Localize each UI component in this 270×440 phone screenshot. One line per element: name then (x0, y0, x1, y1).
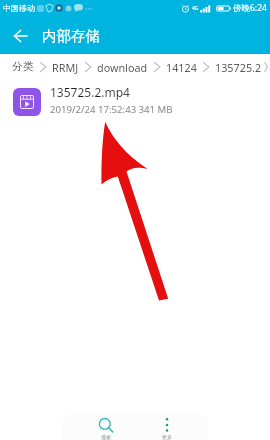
staticText: RRMJ (52, 60, 79, 75)
staticText: 135725.2.mp4 (50, 84, 130, 100)
staticText: 搜索 (101, 434, 111, 440)
button[interactable]: 14124 (166, 60, 197, 75)
staticText: 更多 (162, 434, 172, 440)
staticText: 14124 (166, 60, 197, 75)
button[interactable]: 更多 (147, 413, 187, 440)
staticText: 傍晚6:24 (233, 2, 267, 14)
button[interactable]: 分类 (12, 60, 34, 74)
staticText: 内部存储 (42, 27, 100, 45)
button[interactable]: RRMJ (52, 60, 79, 75)
button[interactable]: 搜索 (86, 413, 126, 440)
staticText: 2019/2/24 17:52:43 341 MB (50, 103, 173, 116)
button[interactable]: Back (0, 17, 41, 55)
staticText: 分类 (12, 60, 34, 74)
staticText: 4G (192, 5, 199, 12)
button[interactable]: download (97, 60, 148, 75)
staticText: download (97, 60, 148, 75)
button[interactable]: 135725.2 (215, 60, 262, 75)
staticText: 135725.2 (215, 60, 262, 75)
staticText: 中国移动 (3, 3, 35, 13)
button[interactable]: 135725.2.mp4 (0, 80, 270, 124)
